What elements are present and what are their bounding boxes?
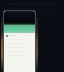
staticText: Automate Record Actions Replay xyxy=(8,2,56,6)
button[interactable] xyxy=(6,54,33,56)
button[interactable] xyxy=(6,38,33,40)
button[interactable] xyxy=(6,42,33,44)
button[interactable]: Search xyxy=(4,11,35,72)
button[interactable] xyxy=(6,46,33,48)
button[interactable] xyxy=(6,50,33,52)
staticText: Tap record to capture your steps xyxy=(12,7,52,11)
